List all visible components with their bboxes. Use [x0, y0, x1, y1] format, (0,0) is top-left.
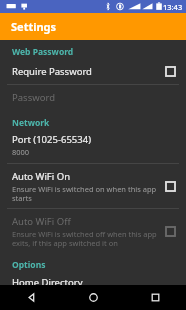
- button[interactable]: Home Directory: [0, 273, 186, 285]
- staticText: Home Directory: [12, 276, 83, 285]
- staticText: Port (1025-65534): [12, 133, 91, 146]
- button[interactable]: Back: [0, 285, 62, 310]
- button[interactable]: Password: [0, 88, 186, 107]
- button[interactable]: Require Password: [0, 60, 186, 83]
- staticText: 8000: [12, 147, 30, 157]
- button[interactable]: Auto WiFi On: [0, 165, 186, 208]
- button[interactable]: Port (1025-65534): [0, 131, 186, 159]
- staticText: Auto WiFi On: [12, 170, 71, 183]
- button[interactable]: Home: [62, 285, 124, 310]
- staticText: Web Password: [12, 46, 74, 58]
- staticText: Require Password: [12, 65, 92, 78]
- staticText: Auto WiFi Off: [12, 215, 71, 228]
- staticText: Network: [12, 117, 50, 129]
- staticText: 13:43: [163, 2, 183, 12]
- staticText: Ensure WiFi is switched off when this ap…: [12, 229, 159, 248]
- staticText: Ensure WiFi is switched on when this app…: [12, 184, 159, 203]
- staticText: Settings: [11, 19, 57, 34]
- staticText: Options: [12, 259, 46, 271]
- button[interactable]: Recent apps: [124, 285, 186, 310]
- button[interactable]: Auto WiFi Off: [0, 210, 186, 253]
- staticText: Password: [12, 91, 55, 104]
